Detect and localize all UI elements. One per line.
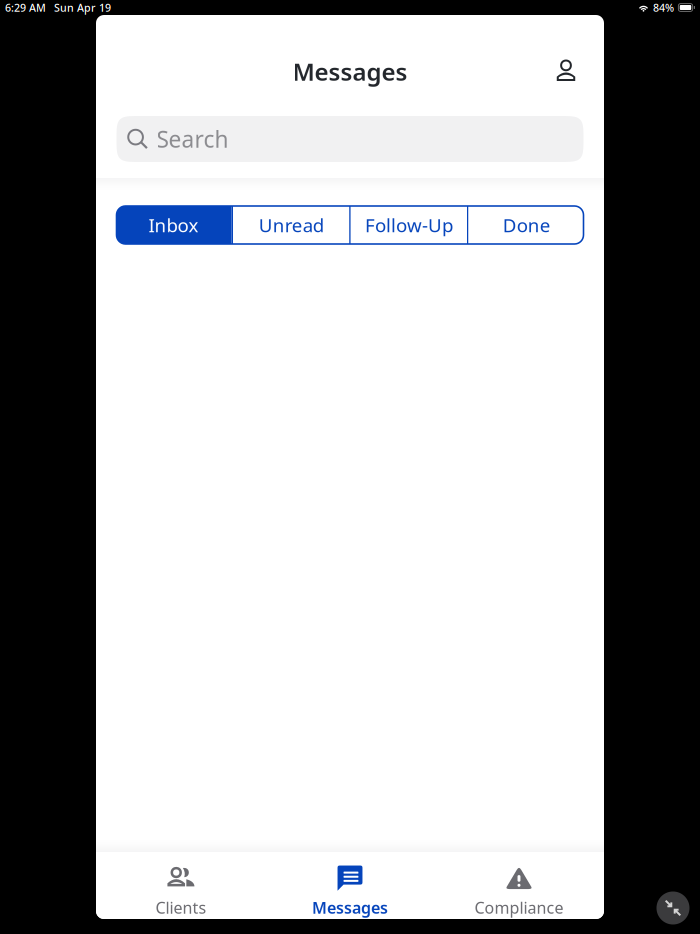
button[interactable]: Messages (265, 852, 434, 919)
button[interactable]: Inbox (115, 206, 231, 244)
staticText: Sun Apr 19 (54, 0, 111, 15)
staticText: Unread (259, 213, 324, 237)
staticText: 84% (653, 0, 674, 15)
button[interactable]: Search (116, 116, 583, 162)
button[interactable]: Done (468, 206, 585, 244)
button[interactable]: Unread (233, 206, 349, 244)
staticText: Messages (312, 897, 388, 918)
staticText: Follow-Up (365, 213, 453, 237)
staticText: 6:29 AM (5, 0, 46, 15)
staticText: Search (156, 124, 228, 154)
staticText: Clients (155, 897, 206, 918)
button[interactable]: Clients (96, 852, 265, 919)
staticText: Compliance (474, 897, 563, 918)
button[interactable]: Follow-Up (351, 206, 467, 244)
staticText: Messages (292, 56, 407, 87)
staticText: Done (503, 213, 551, 237)
button[interactable]: Compliance (434, 852, 603, 919)
button[interactable]: Exit full screen (651, 886, 695, 930)
button[interactable]: Account (544, 43, 588, 87)
staticText: Inbox (148, 213, 198, 237)
